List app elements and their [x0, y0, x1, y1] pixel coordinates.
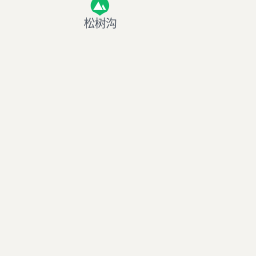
staticText: 松树沟: [84, 14, 117, 31]
button[interactable]: 松树沟: [0, 0, 256, 256]
